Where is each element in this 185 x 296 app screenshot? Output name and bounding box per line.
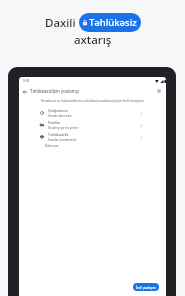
staticText: Hesabınızı və məlumatlarınızı təhlükəsiz…	[41, 99, 144, 103]
staticText: axtarış	[74, 32, 112, 48]
staticText: Daxili	[45, 15, 76, 31]
staticText: Hesabı idarə edin	[48, 114, 72, 118]
button[interactable]: Parollar	[19, 119, 166, 131]
staticText: Yoxlanışı yerinə yetirin	[48, 126, 79, 130]
button[interactable]: Daha çox	[45, 144, 59, 148]
staticText: Təhlükəsizlik	[48, 132, 69, 137]
staticText: Qurğularınız	[48, 108, 68, 113]
staticText: İndi yoxlayın	[136, 285, 156, 289]
button[interactable]: Qurğularınız	[19, 107, 166, 119]
staticText: Parollar	[48, 120, 61, 125]
button[interactable]: İndi yoxlayın	[133, 283, 159, 291]
staticText: Standart parametrlər	[48, 138, 77, 142]
button[interactable]: Account	[157, 89, 161, 93]
button[interactable]: Back	[20, 87, 29, 96]
staticText: Təhlükəsiz	[89, 16, 137, 29]
button[interactable]: Təhlükəsizlik	[19, 131, 166, 143]
staticText: Təhlükəsizliyin yoxlanışı	[30, 88, 79, 94]
staticText: 9:30	[23, 79, 30, 83]
